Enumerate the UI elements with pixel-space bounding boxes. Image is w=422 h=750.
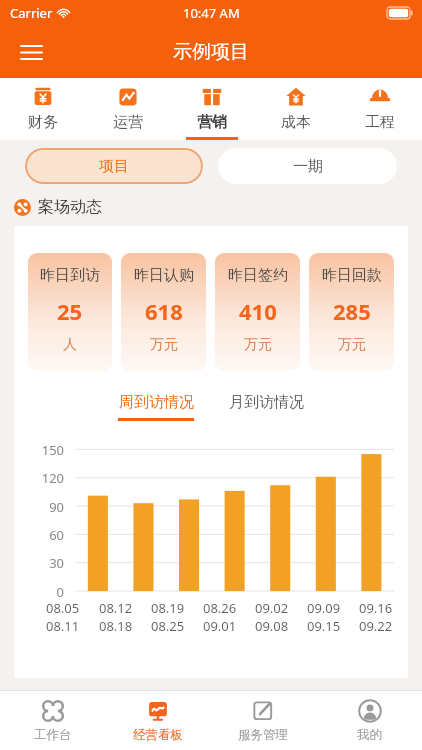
staticText: 08.26: [203, 599, 237, 617]
staticText: 09.02: [255, 599, 289, 617]
staticText: 08.12: [99, 599, 133, 617]
button[interactable]: 工程: [338, 78, 422, 140]
button[interactable]: 成本: [254, 78, 338, 140]
staticText: 案场动态: [38, 197, 102, 217]
staticText: 60: [14, 526, 64, 544]
staticText: 410: [239, 296, 277, 326]
button[interactable]: 月到访情况: [223, 393, 309, 421]
staticText: 服务管理: [238, 727, 288, 743]
button[interactable]: 一期: [218, 148, 397, 184]
staticText: 08.05: [46, 599, 80, 617]
staticText: 月到访情况: [229, 393, 304, 412]
button[interactable]: 昨日回款: [309, 253, 394, 371]
button[interactable]: 工作台: [0, 691, 105, 750]
button[interactable]: 昨日签约: [215, 253, 300, 371]
staticText: 0: [14, 583, 64, 601]
staticText: 项目: [99, 157, 129, 176]
staticText: 经营看板: [133, 727, 183, 743]
staticText: 09.15: [307, 617, 341, 635]
staticText: 09.22: [359, 617, 393, 635]
button[interactable]: 营销: [170, 78, 254, 140]
button[interactable]: 服务管理: [210, 691, 316, 750]
button[interactable]: 昨日到访: [28, 253, 112, 371]
staticText: 昨日签约: [228, 266, 288, 285]
staticText: 昨日回款: [322, 266, 382, 285]
staticText: 我的: [357, 727, 382, 743]
staticText: 90: [14, 498, 64, 516]
staticText: 120: [14, 469, 64, 487]
staticText: 工作台: [34, 727, 72, 743]
staticText: 营销: [197, 113, 227, 132]
staticText: 08.18: [99, 617, 133, 635]
staticText: 昨日认购: [134, 266, 194, 285]
button[interactable]: 周到访情况: [113, 393, 199, 421]
button[interactable]: Menu: [10, 31, 52, 73]
staticText: 人: [63, 336, 77, 354]
button[interactable]: 运营: [85, 78, 170, 140]
button[interactable]: 经营看板: [105, 691, 210, 750]
staticText: 成本: [281, 113, 311, 132]
staticText: 运营: [113, 113, 143, 132]
staticText: 万元: [244, 336, 272, 354]
staticText: 09.08: [255, 617, 289, 635]
staticText: 150: [14, 441, 64, 459]
button[interactable]: 项目: [25, 148, 203, 184]
staticText: 财务: [28, 113, 58, 132]
button[interactable]: 昨日认购: [121, 253, 206, 371]
staticText: 万元: [150, 336, 178, 354]
staticText: 08.25: [151, 617, 185, 635]
button[interactable]: 财务: [0, 78, 85, 140]
staticText: 09.16: [359, 599, 393, 617]
staticText: Carrier: [10, 4, 53, 22]
staticText: 万元: [338, 336, 366, 354]
staticText: 昨日到访: [40, 266, 100, 285]
staticText: 一期: [293, 157, 323, 176]
staticText: 工程: [365, 113, 395, 132]
staticText: 09.09: [307, 599, 341, 617]
staticText: 周到访情况: [119, 393, 194, 412]
staticText: 示例项目: [173, 40, 249, 64]
staticText: 09.01: [203, 617, 237, 635]
staticText: 618: [145, 296, 183, 326]
staticText: 10:47 AM: [183, 4, 240, 22]
staticText: 25: [57, 296, 83, 326]
staticText: 285: [333, 296, 371, 326]
staticText: 08.19: [151, 599, 185, 617]
button[interactable]: 我的: [316, 691, 422, 750]
staticText: 30: [14, 554, 64, 572]
staticText: 08.11: [46, 617, 80, 635]
